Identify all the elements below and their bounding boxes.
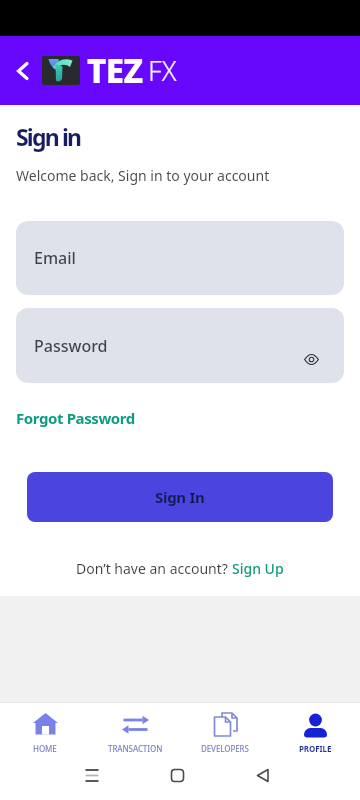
button[interactable]: Sign Up — [232, 559, 284, 578]
staticText: Sign In — [155, 487, 205, 507]
button[interactable]: PROFILE — [270, 703, 360, 760]
button[interactable]: Email — [16, 221, 344, 295]
button[interactable]: HOME — [0, 703, 90, 760]
button[interactable]: Sign In — [27, 472, 333, 522]
staticText: Don’t have an account? — [76, 559, 232, 578]
staticText: DEVELOPERS — [201, 743, 249, 754]
staticText: TRANSACTION — [108, 743, 163, 754]
button[interactable]: Forgot Password — [16, 408, 135, 428]
staticText: HOME — [33, 743, 57, 754]
button[interactable] — [10, 59, 34, 83]
staticText: PROFILE — [299, 743, 332, 754]
staticText: Email — [34, 247, 76, 269]
button[interactable]: Password — [16, 308, 344, 383]
staticText: FX — [148, 52, 177, 89]
button[interactable]: TRANSACTION — [90, 703, 180, 760]
button[interactable]: DEVELOPERS — [180, 703, 270, 760]
staticText: Welcome back, Sign in to your account — [16, 166, 270, 185]
staticText: TEZ — [87, 48, 143, 93]
staticText: Password — [34, 335, 108, 357]
staticText: Sign in — [16, 121, 81, 152]
